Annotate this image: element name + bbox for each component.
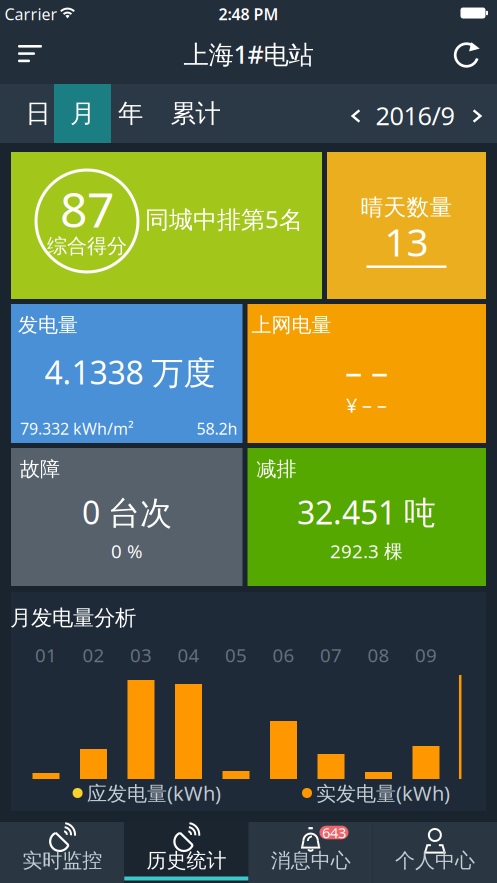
staticText: 07 — [320, 643, 342, 667]
staticText: 同城中排第5名 — [145, 203, 303, 235]
staticText: 故障 — [20, 457, 60, 481]
staticText: 综合得分 — [47, 234, 127, 258]
staticText: 日 — [25, 98, 50, 129]
staticText: 79.332 kWh/m² — [20, 418, 134, 439]
button[interactable] — [462, 96, 492, 136]
staticText: 历史统计 — [146, 848, 226, 873]
staticText: 87 — [60, 177, 114, 241]
button[interactable]: 晴天数量 — [327, 152, 486, 299]
staticText: 292.3 棵 — [330, 539, 403, 563]
staticText: 05 — [225, 643, 247, 667]
staticText: 发电量 — [18, 313, 78, 337]
button[interactable]: 个人中心 — [373, 822, 497, 883]
staticText: 上海1#电站 — [183, 37, 313, 71]
button[interactable] — [341, 96, 371, 136]
staticText: 累计 — [170, 98, 220, 129]
staticText: 643 — [322, 823, 346, 842]
button[interactable]: 故障 — [11, 448, 242, 586]
staticText: 应发电量(kWh) — [87, 780, 221, 806]
button[interactable]: 日 — [11, 84, 65, 143]
staticText: 消息中心 — [271, 848, 351, 873]
staticText: 06 — [272, 643, 294, 667]
button[interactable]: 87 — [11, 152, 322, 299]
staticText: Carrier — [4, 3, 57, 25]
staticText: 实发电量(kWh) — [316, 780, 450, 806]
staticText: 0 % — [111, 539, 143, 563]
staticText: 02 — [82, 643, 104, 667]
staticText: 实时监控 — [22, 848, 102, 873]
button[interactable]: 月 — [54, 84, 111, 143]
staticText: – – — [345, 348, 388, 394]
button[interactable]: 发电量 — [11, 304, 242, 443]
button[interactable]: 减排 — [247, 448, 486, 586]
staticText: 个人中心 — [395, 848, 475, 873]
staticText: 2:48 PM — [218, 3, 278, 25]
staticText: 08 — [367, 643, 389, 667]
staticText: ¥ – – — [346, 392, 387, 418]
staticText: 13 — [384, 216, 428, 267]
staticText: 年 — [118, 98, 143, 129]
button[interactable] — [8, 31, 52, 75]
staticText: 上网电量 — [251, 313, 331, 337]
staticText: 01 — [35, 643, 57, 667]
staticText: 减排 — [256, 457, 296, 481]
staticText: 03 — [130, 643, 152, 667]
staticText: 04 — [177, 643, 199, 667]
staticText: 32.451 吨 — [297, 491, 436, 533]
button[interactable]: 上网电量 — [247, 304, 486, 443]
staticText: 2016/9 — [375, 99, 454, 132]
staticText: 58.2h — [196, 418, 237, 439]
button[interactable] — [453, 41, 480, 68]
staticText: 0 台次 — [82, 491, 172, 533]
button[interactable]: 消息中心 — [248, 822, 373, 883]
button[interactable]: 历史统计 — [124, 822, 248, 883]
staticText: 月 — [70, 98, 95, 129]
button[interactable]: 累计 — [159, 84, 231, 143]
staticText: 09 — [415, 643, 437, 667]
button[interactable]: 实时监控 — [0, 822, 124, 883]
button[interactable]: 年 — [103, 84, 157, 143]
staticText: 4.1338 万度 — [44, 351, 215, 393]
staticText: 晴天数量 — [360, 194, 452, 221]
staticText: 月发电量分析 — [10, 605, 136, 631]
